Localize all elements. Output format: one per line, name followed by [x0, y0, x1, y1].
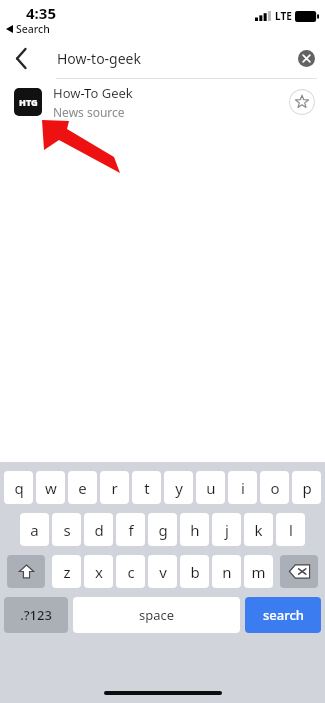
staticText: j — [225, 520, 229, 540]
button[interactable]: f — [116, 513, 145, 546]
staticText: How-to-geek — [57, 49, 141, 68]
button[interactable]: d — [84, 513, 113, 546]
button[interactable]: v — [148, 555, 177, 588]
staticText: r — [111, 478, 118, 498]
button[interactable]: space — [73, 597, 240, 633]
button[interactable]: t — [132, 471, 161, 504]
button[interactable]: r — [100, 471, 129, 504]
staticText: s — [63, 520, 71, 540]
staticText: n — [222, 562, 232, 582]
staticText: a — [30, 520, 39, 540]
button[interactable]: j — [212, 513, 241, 546]
button[interactable]: h — [180, 513, 209, 546]
button[interactable]: k — [244, 513, 273, 546]
button[interactable]: Backspace — [280, 555, 318, 588]
button[interactable]: u — [196, 471, 225, 504]
staticText: f — [128, 520, 134, 540]
button[interactable]: l — [276, 513, 305, 546]
staticText: g — [158, 520, 168, 540]
button[interactable]: x — [84, 555, 113, 588]
staticText: .?123 — [20, 606, 52, 624]
button[interactable]: m — [244, 555, 273, 588]
staticText: y — [175, 478, 183, 498]
staticText: space — [139, 606, 175, 624]
button[interactable]: Back — [0, 38, 42, 78]
staticText: 4:35 — [26, 3, 56, 23]
staticText: q — [14, 478, 24, 498]
staticText: t — [144, 478, 150, 498]
button[interactable]: Add to favorites — [289, 89, 315, 115]
button[interactable]: b — [180, 555, 209, 588]
staticText: v — [159, 562, 167, 582]
staticText: d — [94, 520, 104, 540]
button[interactable]: e — [68, 471, 97, 504]
staticText: News source — [53, 104, 125, 120]
staticText: o — [270, 478, 280, 498]
button[interactable]: .?123 — [4, 597, 68, 633]
staticText: h — [190, 520, 200, 540]
staticText: HTG — [19, 96, 38, 108]
button[interactable]: i — [228, 471, 257, 504]
button[interactable]: n — [212, 555, 241, 588]
button[interactable]: c — [116, 555, 145, 588]
button[interactable]: g — [148, 513, 177, 546]
staticText: How-To Geek — [53, 84, 133, 102]
button[interactable]: s — [52, 513, 81, 546]
button[interactable]: HTG — [0, 79, 325, 125]
staticText: p — [302, 478, 312, 498]
button[interactable]: o — [260, 471, 289, 504]
staticText: i — [241, 478, 245, 498]
staticText: b — [190, 562, 200, 582]
button[interactable]: p — [292, 471, 321, 504]
button[interactable]: y — [164, 471, 193, 504]
button[interactable]: q — [4, 471, 33, 504]
staticText: x — [95, 562, 103, 582]
button[interactable]: Shift — [7, 555, 45, 588]
button[interactable]: Clear text — [287, 38, 325, 78]
staticText: u — [206, 478, 216, 498]
staticText: search — [263, 606, 304, 624]
staticText: l — [289, 520, 293, 540]
button[interactable]: a — [20, 513, 49, 546]
staticText: k — [254, 520, 263, 540]
staticText: c — [127, 562, 135, 582]
staticText: e — [78, 478, 87, 498]
button[interactable]: z — [52, 555, 81, 588]
staticText: LTE — [275, 9, 292, 23]
button[interactable]: w — [36, 471, 65, 504]
staticText: z — [63, 562, 71, 582]
button[interactable]: search — [245, 597, 321, 633]
staticText: m — [251, 562, 266, 582]
staticText: Search — [16, 22, 50, 36]
staticText: w — [45, 478, 57, 498]
